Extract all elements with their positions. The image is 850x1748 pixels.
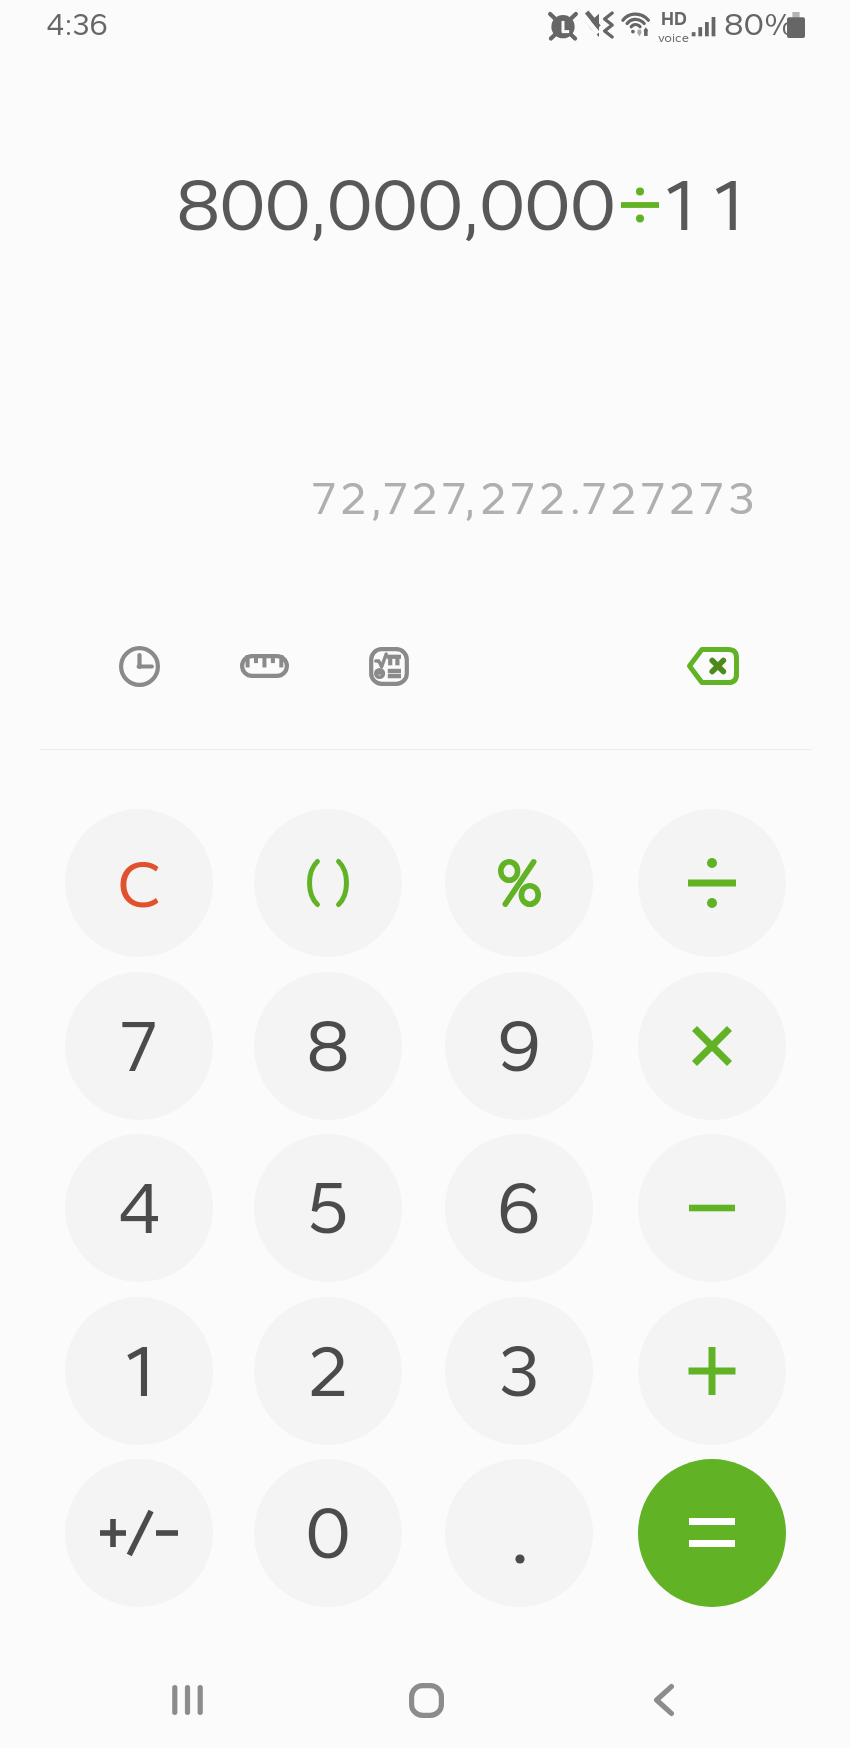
staticText: 0 [305,1490,352,1576]
button[interactable]: Home [384,1658,468,1742]
staticText: 4:36 [46,6,108,42]
button[interactable]: 8 [254,972,402,1120]
staticText: 9 [497,1003,542,1089]
staticText: voice [658,30,690,46]
button[interactable]: Scientific calculator [348,625,430,707]
staticText: 6 [497,1165,542,1251]
staticText: HD [661,8,687,30]
button[interactable]: 7 [65,972,213,1120]
button[interactable]: 9 [445,972,593,1120]
button[interactable]: 2 [254,1297,402,1445]
button[interactable]: 0 [254,1459,402,1607]
button[interactable]: 4 [65,1134,213,1282]
button[interactable]: Backspace [671,625,753,707]
button[interactable]: 6 [445,1134,593,1282]
staticText: C [117,843,162,923]
button[interactable]: Decimal point [445,1459,593,1607]
staticText: 80% [724,5,795,43]
button[interactable]: Plus [638,1297,786,1445]
button[interactable]: 5 [254,1134,402,1282]
button[interactable]: Multiply [638,972,786,1120]
staticText: 1 [125,1328,154,1414]
staticText: 3 [498,1328,540,1414]
button[interactable]: C [65,809,213,957]
staticText: 72,727,272.727273 [312,470,760,525]
staticText: 11 [665,161,762,249]
button[interactable]: History [98,625,180,707]
staticText: 8 [306,1003,351,1089]
button[interactable]: 1 [65,1297,213,1445]
staticText: 4 [117,1165,162,1251]
staticText: 2 [308,1328,348,1414]
staticText: 7 [120,1003,158,1089]
button[interactable]: Back [622,1658,706,1742]
button[interactable]: Equals [638,1459,786,1607]
staticText: 5 [307,1165,349,1251]
button[interactable]: Percent [445,809,593,957]
button[interactable]: Unit converter [223,625,305,707]
button[interactable]: Minus [638,1134,786,1282]
button[interactable]: Plus minus [65,1459,213,1607]
button[interactable]: Divide [638,809,786,957]
button[interactable]: Parentheses [254,809,402,957]
button[interactable]: Recent apps [145,1658,229,1742]
staticText: 800,000,000 [176,161,615,249]
button[interactable]: 3 [445,1297,593,1445]
